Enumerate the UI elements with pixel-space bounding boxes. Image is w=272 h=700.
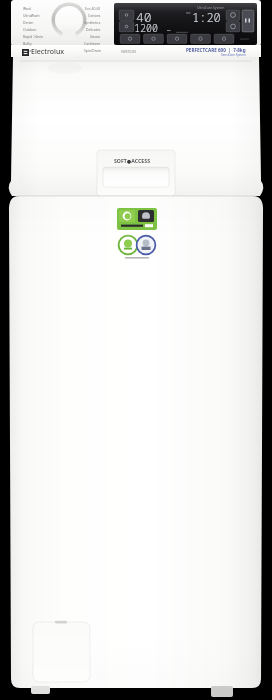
staticText: 1:20 — [192, 9, 221, 25]
button[interactable]: Start Pause — [242, 10, 255, 33]
staticText: Outdoor — [23, 27, 37, 32]
staticText: Spin/Drain — [84, 48, 101, 53]
staticText: Steam — [90, 34, 101, 39]
staticText: Rinse — [23, 48, 32, 53]
button[interactable]: Filter access panel — [33, 622, 90, 682]
button[interactable]: PERFECTCARE 600 | 7-8kg — [186, 47, 246, 57]
button[interactable]: Option 4 — [191, 34, 211, 44]
staticText: UltraCare System — [197, 5, 225, 10]
staticText: SOFT●ACCESS — [114, 157, 150, 164]
button[interactable]: Programme selector dial — [51, 3, 87, 39]
button[interactable]: Electrolux — [22, 47, 65, 57]
staticText: SensiCare System — [221, 53, 246, 57]
staticText: Rapid 14min — [23, 34, 43, 39]
staticText: Cottons — [88, 13, 101, 18]
staticText: 1200 — [134, 21, 158, 35]
staticText: Denim — [23, 20, 34, 25]
staticText: Synthetics — [84, 20, 101, 25]
button[interactable]: Option 2 — [144, 34, 164, 44]
button[interactable]: Spin speed — [119, 21, 135, 32]
staticText: 40 — [136, 8, 152, 26]
button[interactable]: Option 5 — [214, 34, 234, 44]
button[interactable]: Temperature — [119, 10, 135, 21]
staticText: PERFECTCARE 600 | 7-8kg — [186, 47, 246, 53]
button[interactable]: Option 1 — [120, 34, 140, 44]
staticText: Bulky — [23, 41, 32, 46]
staticText: Cashmere — [84, 41, 101, 46]
button[interactable]: Delay start — [227, 10, 241, 21]
staticText: Electrolux — [31, 47, 65, 57]
staticText: EW6T5261 — [121, 50, 137, 54]
button[interactable]: Time save — [227, 21, 241, 32]
staticText: UltraWash — [23, 13, 40, 18]
staticText: Delicates — [86, 27, 101, 32]
staticText: Wool — [23, 6, 32, 11]
button[interactable]: Option 3 — [167, 34, 187, 44]
staticText: Eco 40-60 — [85, 6, 101, 11]
button[interactable]: Open lid — [97, 150, 175, 196]
